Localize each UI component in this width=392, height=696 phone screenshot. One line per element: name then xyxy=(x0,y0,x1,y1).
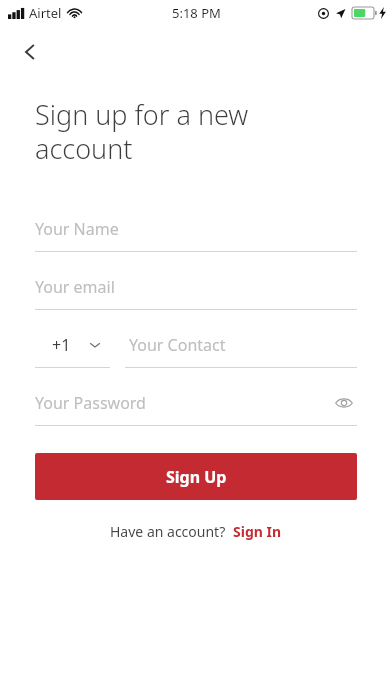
button[interactable]: Show password xyxy=(331,390,357,416)
staticText: Sign up for a new account xyxy=(35,96,249,167)
button[interactable]: Your Password xyxy=(35,388,357,426)
staticText: Your Password xyxy=(35,392,146,414)
staticText: Sign Up xyxy=(166,466,227,488)
staticText: Sign In xyxy=(233,522,282,541)
staticText: Your email xyxy=(35,276,115,298)
staticText: Your Name xyxy=(35,218,119,240)
staticText: +1 xyxy=(52,334,71,356)
staticText: 5:18 PM xyxy=(172,4,221,22)
button[interactable]: Back xyxy=(8,30,52,74)
button[interactable]: Your Name xyxy=(35,214,357,252)
button[interactable]: +1 xyxy=(35,330,110,368)
button[interactable]: Your email xyxy=(35,272,357,310)
button[interactable]: Sign In xyxy=(233,522,282,541)
staticText: Airtel xyxy=(29,4,62,22)
button[interactable]: Your Contact xyxy=(125,330,357,368)
staticText: Have an account? xyxy=(110,522,226,541)
staticText: Your Contact xyxy=(129,334,226,356)
button[interactable]: Sign Up xyxy=(35,453,357,500)
